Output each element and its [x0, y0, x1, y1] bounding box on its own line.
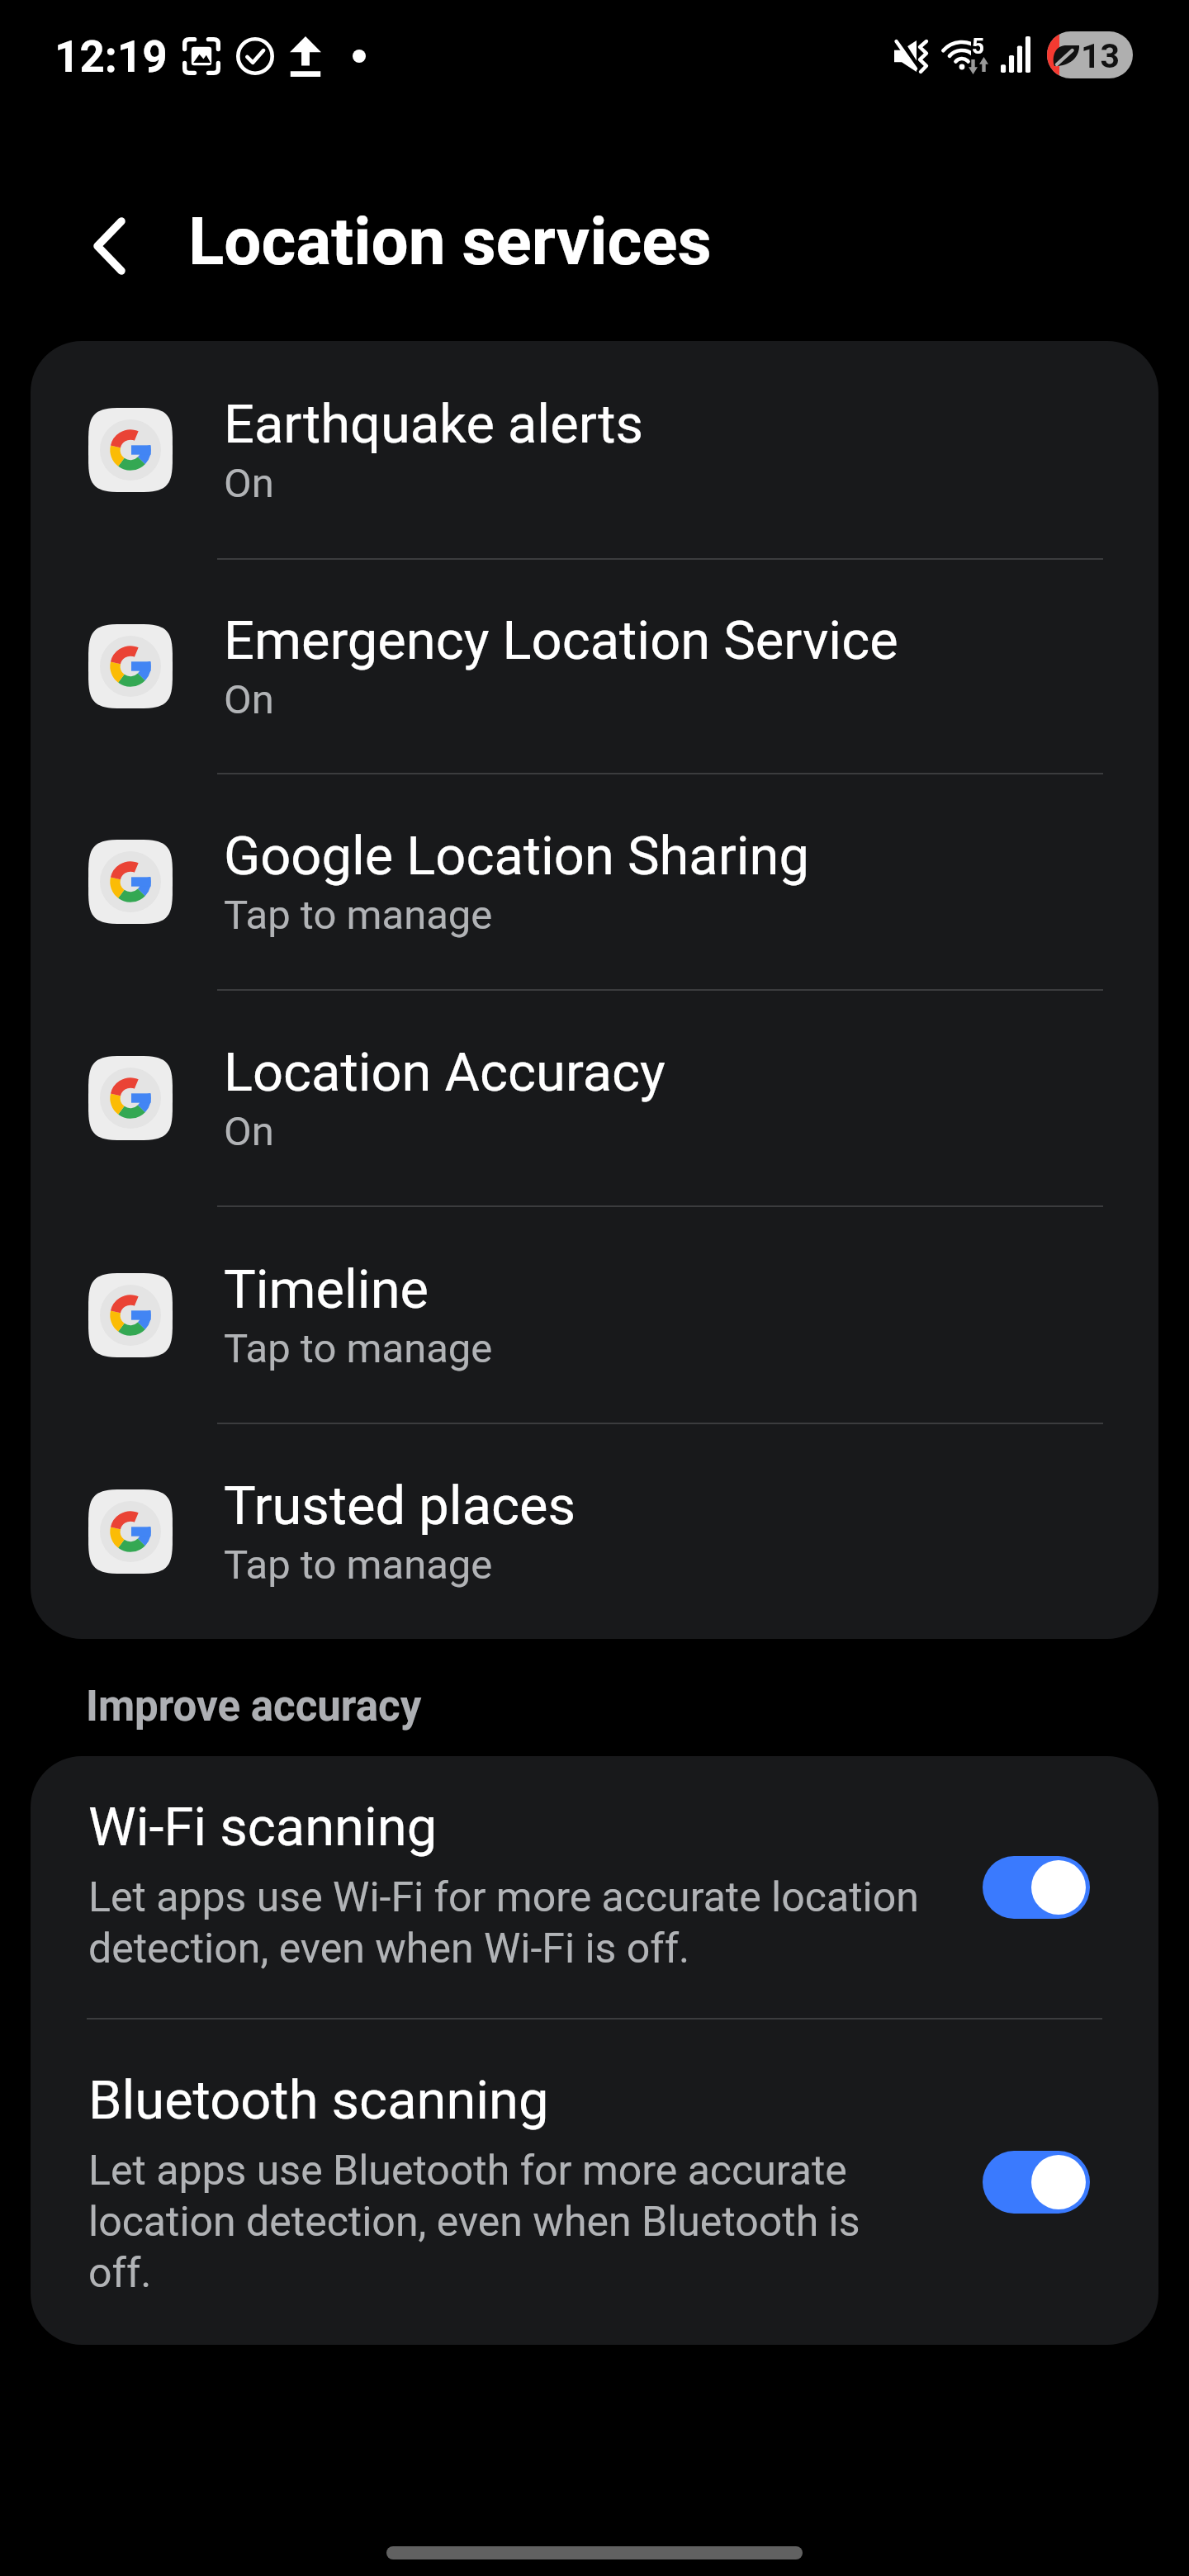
staticText: Google Location Sharing: [224, 825, 809, 888]
staticText: Earthquake alerts: [224, 393, 644, 456]
button[interactable]: Timeline: [31, 1207, 1158, 1423]
staticText: Timeline: [224, 1258, 429, 1321]
staticText: On: [224, 460, 274, 507]
staticText: Let apps use Bluetooth for more accurate…: [88, 2147, 926, 2297]
staticText: Tap to manage: [224, 1541, 493, 1589]
staticText: On: [224, 1108, 274, 1155]
staticText: 13: [1081, 36, 1120, 76]
staticText: Let apps use Wi-Fi for more accurate loc…: [88, 1873, 926, 1972]
button[interactable]: Back: [54, 214, 142, 301]
staticText: Bluetooth scanning: [88, 2069, 549, 2132]
button[interactable]: Wi-Fi scanning: [31, 1756, 1158, 2018]
staticText: Location services: [188, 203, 712, 281]
staticText: Tap to manage: [224, 892, 493, 939]
staticText: Trusted places: [224, 1475, 576, 1537]
button[interactable]: Location Accuracy: [31, 991, 1158, 1205]
button[interactable]: Google Location Sharing: [31, 774, 1158, 989]
staticText: Tap to manage: [224, 1325, 493, 1372]
staticText: 5: [972, 34, 984, 59]
button[interactable]: Emergency Location Service: [31, 560, 1158, 773]
staticText: 12:19: [54, 31, 168, 83]
button[interactable]: Toggle: [983, 1856, 1090, 1919]
staticText: Emergency Location Service: [224, 609, 898, 672]
staticText: Wi-Fi scanning: [88, 1796, 438, 1859]
button[interactable]: Bluetooth scanning: [31, 2020, 1158, 2345]
button[interactable]: Trusted places: [31, 1424, 1158, 1639]
staticText: Location Accuracy: [224, 1041, 666, 1104]
staticText: On: [224, 676, 274, 723]
button[interactable]: Earthquake alerts: [31, 341, 1158, 558]
button[interactable]: Toggle: [983, 2151, 1090, 2214]
staticText: Improve accuracy: [86, 1682, 422, 1731]
